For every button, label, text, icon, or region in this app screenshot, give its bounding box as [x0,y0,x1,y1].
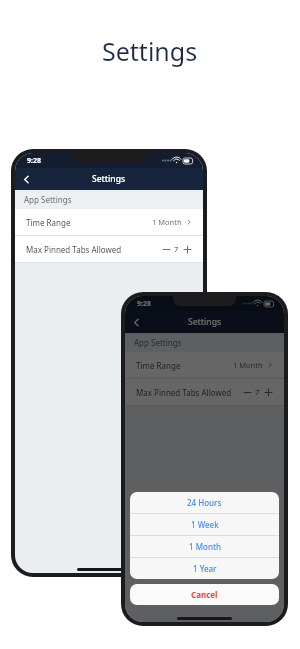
staticText: Time Range [136,360,181,371]
staticText: 7 [255,387,260,397]
button[interactable]: Back [125,311,147,333]
staticText: App Settings [24,194,72,205]
button[interactable]: Max Pinned Tabs Allowed [125,379,284,405]
button[interactable]: Max Pinned Tabs Allowed [15,236,203,262]
staticText: Time Range [26,217,71,228]
staticText: Max Pinned Tabs Allowed [26,244,122,255]
button[interactable]: 1 Month [130,536,279,557]
staticText: Settings [102,34,198,68]
staticText: 1 Year [193,563,217,574]
button[interactable]: Increase [182,244,192,254]
staticText: 1 Month [233,360,263,370]
button[interactable]: 1 Week [130,514,279,535]
staticText: 1 Month [152,217,182,227]
button[interactable]: 24 Hours [130,492,279,513]
button[interactable]: Back [15,168,37,190]
button[interactable]: Decrease [161,244,171,254]
button[interactable]: Time Range [15,209,203,235]
staticText: 9:28 [137,299,151,309]
button[interactable]: Time Range [125,352,284,378]
button[interactable]: Cancel [130,584,279,605]
staticText: 1 Week [191,519,219,530]
staticText: 7 [174,244,179,254]
button[interactable]: 1 Year [130,558,279,579]
staticText: App Settings [134,337,182,348]
staticText: Max Pinned Tabs Allowed [136,387,232,398]
staticText: 1 Month [189,541,221,552]
button[interactable]: Increase [263,387,273,397]
staticText: 24 Hours [187,497,222,508]
button[interactable]: Decrease [242,387,252,397]
staticText: 9:28 [27,156,41,166]
staticText: Settings [92,173,126,185]
staticText: Settings [188,316,222,328]
staticText: Cancel [191,589,218,600]
